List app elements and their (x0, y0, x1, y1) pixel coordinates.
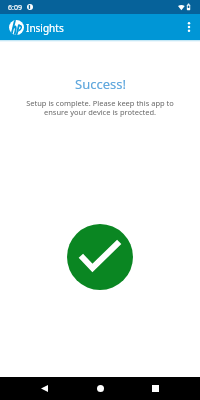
staticText: 6:09 (8, 3, 22, 13)
staticText: Setup is complete. Please keep this app … (17, 98, 183, 118)
staticText: Insights (26, 21, 64, 35)
button[interactable]: Home (86, 377, 115, 400)
staticText: Success! (75, 75, 126, 93)
button[interactable]: Recent apps (141, 377, 170, 400)
button[interactable]: More options (178, 16, 200, 38)
button[interactable]: Back (30, 377, 59, 400)
